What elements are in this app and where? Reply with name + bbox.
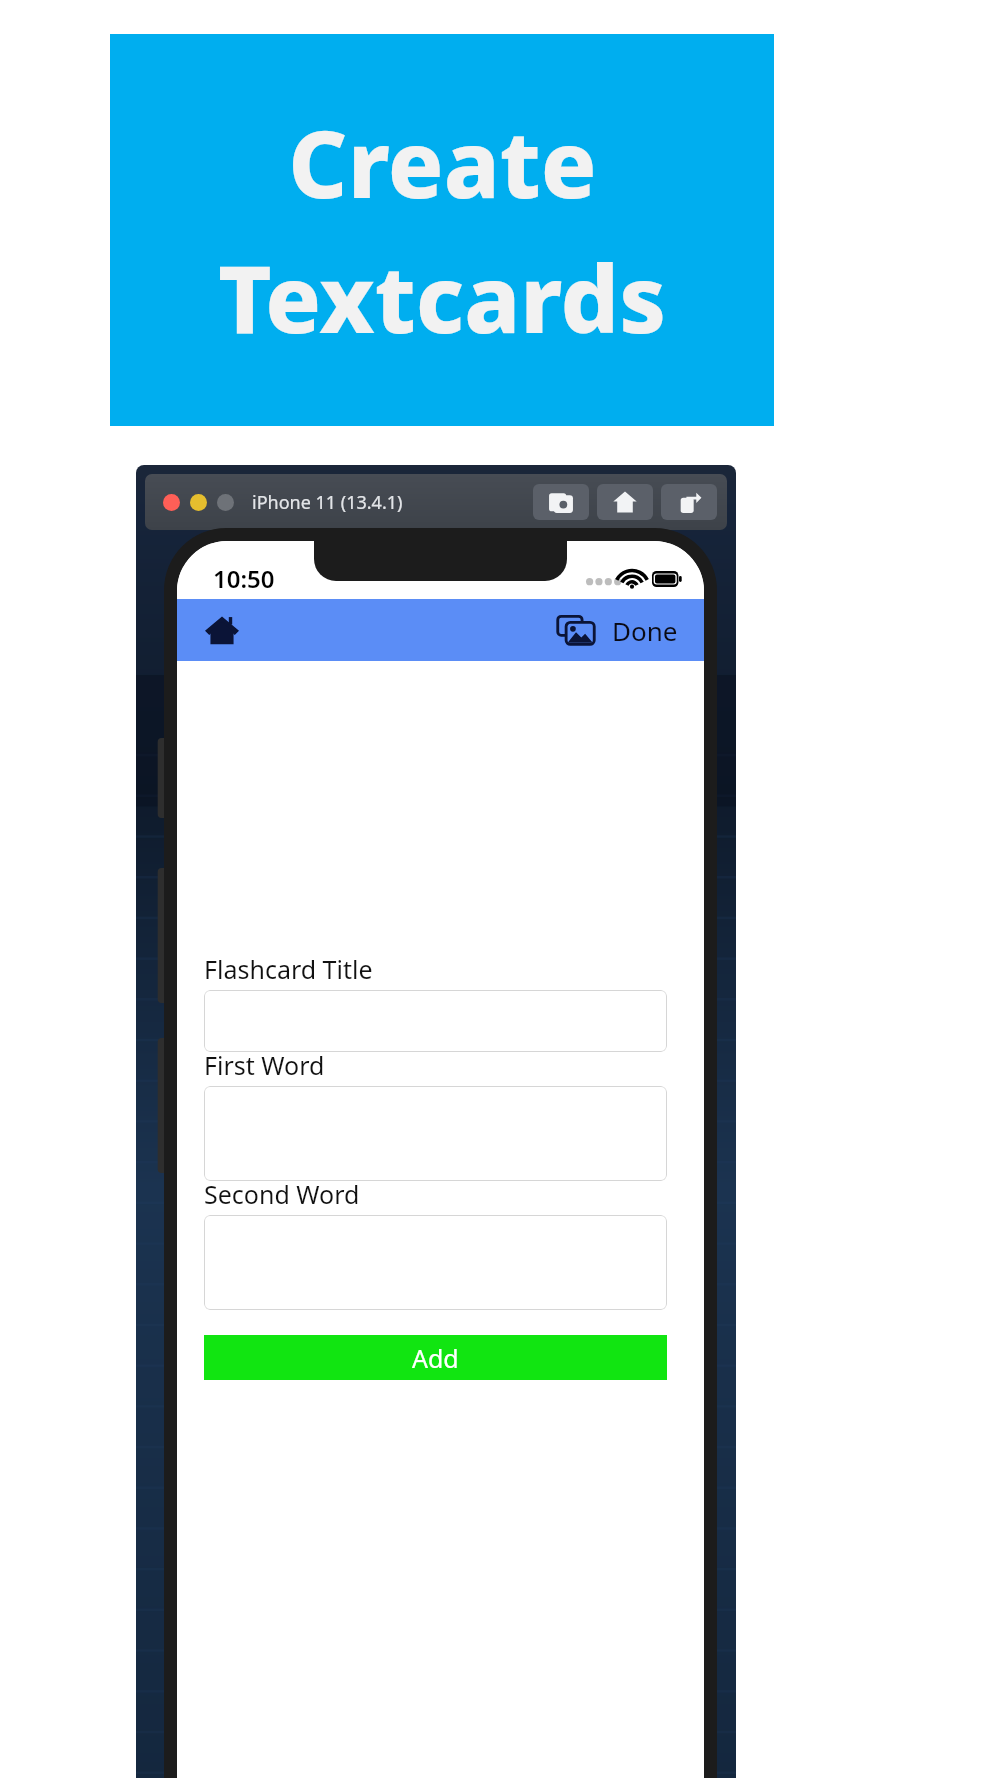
staticText: Add: [412, 1341, 459, 1375]
button[interactable]: Screenshot: [533, 484, 589, 520]
staticText: Second Word: [204, 1177, 360, 1211]
button[interactable]: Close: [163, 494, 180, 511]
button[interactable]: Done: [612, 613, 678, 648]
staticText: Create: [288, 100, 597, 225]
staticText: First Word: [204, 1048, 325, 1082]
button[interactable]: Add: [204, 1335, 667, 1380]
staticText: Done: [612, 613, 678, 648]
button[interactable]: Minimize: [190, 494, 207, 511]
staticText: Textcards: [218, 235, 666, 360]
staticText: iPhone 11 (13.4.1): [252, 490, 403, 515]
staticText: Flashcard Title: [204, 952, 373, 986]
button[interactable]: Second Word: [204, 1215, 667, 1310]
button[interactable]: Home: [199, 607, 245, 653]
button[interactable]: Photos: [552, 606, 600, 654]
button[interactable]: Home: [597, 484, 653, 520]
button[interactable]: Flashcard Title: [204, 990, 667, 1052]
button[interactable]: First Word: [204, 1086, 667, 1181]
button[interactable]: Zoom: [217, 494, 234, 511]
button[interactable]: Rotate: [661, 484, 717, 520]
staticText: 10:50: [213, 562, 275, 595]
